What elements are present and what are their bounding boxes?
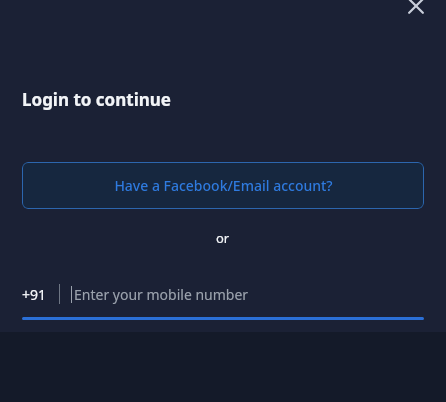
staticText: Enter your mobile number	[74, 285, 249, 304]
staticText: or	[216, 229, 230, 247]
button[interactable]: Have a Facebook/Email account?	[22, 162, 424, 209]
button[interactable]: Close	[394, 0, 438, 28]
staticText: Login to continue	[22, 88, 172, 111]
staticText: +91	[22, 285, 47, 304]
button[interactable]: +91	[22, 281, 424, 320]
staticText: Have a Facebook/Email account?	[114, 176, 333, 195]
